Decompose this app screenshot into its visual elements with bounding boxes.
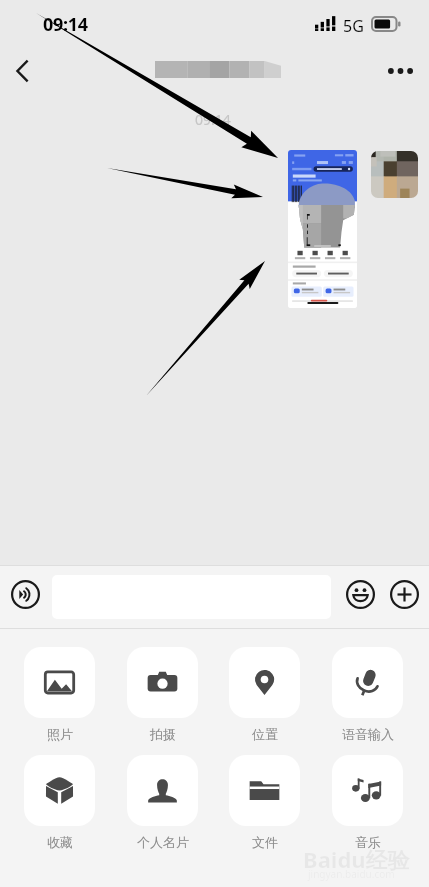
staticText: 09:14 [195,110,231,129]
button[interactable]: 音乐 [332,755,403,850]
button[interactable]: 位置 [229,647,300,742]
staticText: 音乐 [355,834,381,850]
staticText: 5G [343,15,364,37]
staticText: 个人名片 [137,834,189,850]
staticText: 文件 [252,834,278,850]
staticText: 语音输入 [342,726,394,742]
button[interactable]: 照片 [24,647,95,742]
button[interactable]: 语音输入 [332,647,403,742]
staticText: jingyan.baidu.com [308,867,395,881]
button[interactable]: Emoji [340,574,380,614]
staticText: Baidu经验 [303,844,410,874]
staticText: 照片 [47,726,73,742]
button[interactable]: 收藏 [24,755,95,850]
button[interactable]: 拍摄 [127,647,198,742]
button[interactable]: 个人名片 [127,755,198,850]
button[interactable]: Avatar [371,151,418,198]
button[interactable]: Photo message [288,150,357,308]
staticText: 位置 [252,726,278,742]
button[interactable]: More options [379,50,421,92]
button[interactable]: More functions [384,574,424,614]
button[interactable]: Voice input [5,574,45,614]
staticText: 拍摄 [150,726,176,742]
button[interactable]: Back [0,49,44,93]
staticText: 收藏 [47,834,73,850]
button[interactable]: 文件 [229,755,300,850]
staticText: 09:14 [43,12,88,37]
